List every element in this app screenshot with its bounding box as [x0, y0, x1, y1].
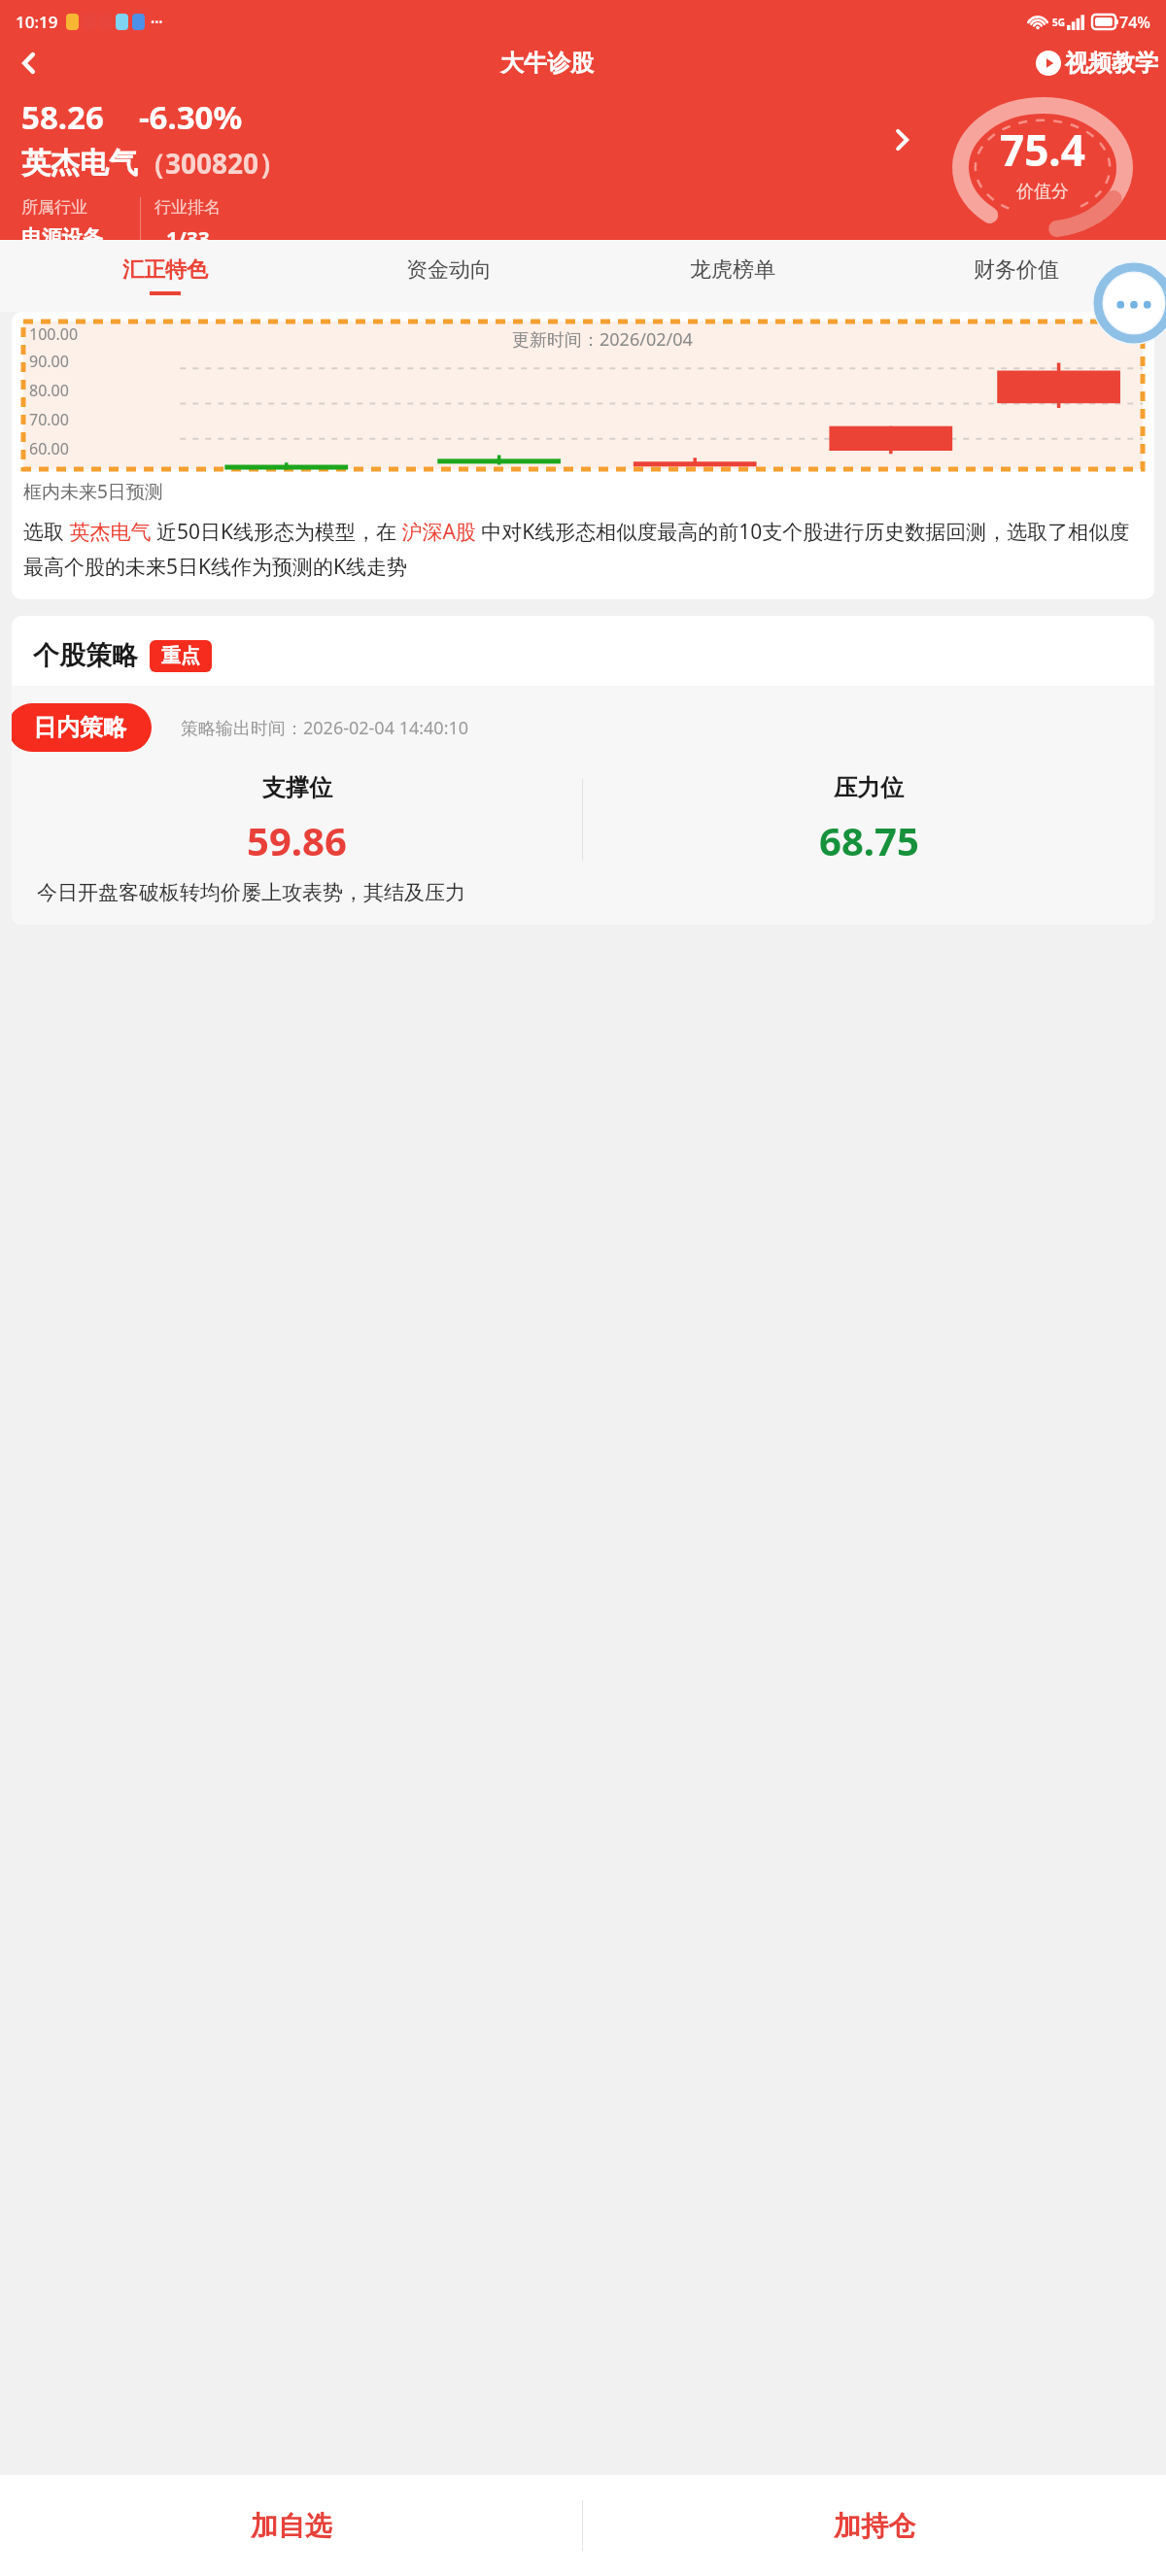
staticText: 个股策略 [33, 639, 138, 672]
staticText: 今日开盘客破板转均价屡上攻表势，其结及压力 [37, 880, 465, 905]
staticText: 重点 [161, 644, 200, 668]
button[interactable]: 日内策略 [33, 713, 126, 742]
staticText: 74% [1119, 12, 1150, 33]
staticText: 所属行业 [21, 197, 87, 218]
staticText: 80.00 [29, 380, 69, 401]
button[interactable]: 汇正特色 [23, 240, 307, 312]
staticText: 价值分 [1016, 181, 1069, 203]
staticText: 策略输出时间：2026-02-04 14:40:10 [181, 716, 469, 740]
staticText: 60.00 [29, 438, 69, 459]
staticText: 68.75 [819, 814, 919, 866]
staticText: 资金动向 [406, 256, 492, 284]
staticText: -6.30% [139, 95, 243, 139]
button[interactable]: 视频教学 [1036, 49, 1158, 78]
button[interactable]: 加自选 [0, 2475, 582, 2576]
staticText: 框内未来5日预测 [23, 479, 163, 504]
staticText: 加持仓 [834, 2509, 915, 2543]
staticText: 更新时间：2026/02/04 [512, 327, 693, 352]
staticText: 行业排名 [154, 197, 221, 218]
staticText: 75.4 [1000, 120, 1085, 179]
staticText: 10:19 [16, 11, 58, 33]
staticText: 压力位 [834, 773, 904, 802]
staticText: 100.00 [29, 323, 79, 345]
button[interactable]: 加持仓 [583, 2475, 1166, 2576]
staticText: 龙虎榜单 [690, 256, 775, 284]
staticText: 电源设备 [21, 225, 103, 240]
staticText: 70.00 [29, 409, 69, 430]
staticText: 支撑位 [262, 773, 332, 802]
staticText: 58.26 [21, 95, 104, 139]
staticText: 财务价值 [974, 256, 1059, 284]
button[interactable]: 财务价值 [874, 240, 1158, 312]
staticText: 大牛诊股 [500, 49, 594, 78]
button[interactable]: Customer service chat [1092, 261, 1166, 345]
staticText: 加自选 [251, 2509, 332, 2543]
staticText: （300820） [138, 145, 287, 182]
button[interactable]: 龙虎榜单 [591, 240, 874, 312]
staticText: 汇正特色 [122, 256, 208, 284]
staticText: 英杰电气 [21, 145, 138, 182]
staticText: 90.00 [29, 351, 69, 372]
staticText: ••• [151, 15, 163, 29]
staticText: 选取 英杰电气 近50日K线形态为模型，在 沪深A股 中对K线形态相似度最高的前… [23, 518, 1143, 580]
staticText: 1/33 [166, 225, 210, 240]
staticText: 59.86 [247, 814, 347, 866]
staticText: 日内策略 [33, 713, 126, 742]
button[interactable]: Back [0, 44, 58, 83]
staticText: 视频教学 [1065, 49, 1158, 78]
staticText: 5G [1052, 16, 1065, 29]
button[interactable]: 资金动向 [307, 240, 591, 312]
